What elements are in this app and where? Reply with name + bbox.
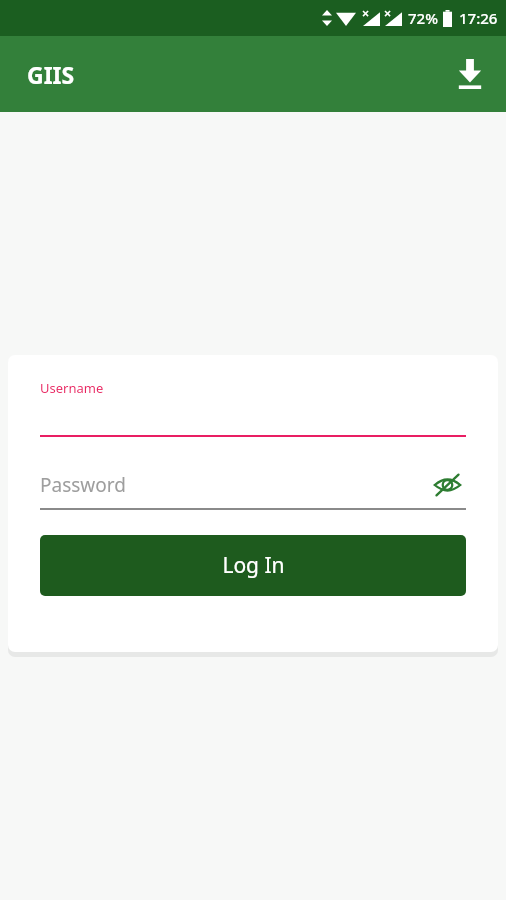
button[interactable]: Password xyxy=(40,469,466,510)
staticText: Log In xyxy=(222,551,285,580)
button[interactable]: Show password xyxy=(428,469,466,501)
staticText: Username xyxy=(40,379,104,397)
staticText: 72% xyxy=(408,8,438,28)
button[interactable]: Log In xyxy=(40,535,466,596)
staticText: 17:26 xyxy=(459,8,498,28)
staticText: GIIS xyxy=(27,59,75,90)
button[interactable]: Download xyxy=(448,52,492,96)
button[interactable]: Username xyxy=(40,379,466,437)
staticText: Password xyxy=(40,472,126,498)
